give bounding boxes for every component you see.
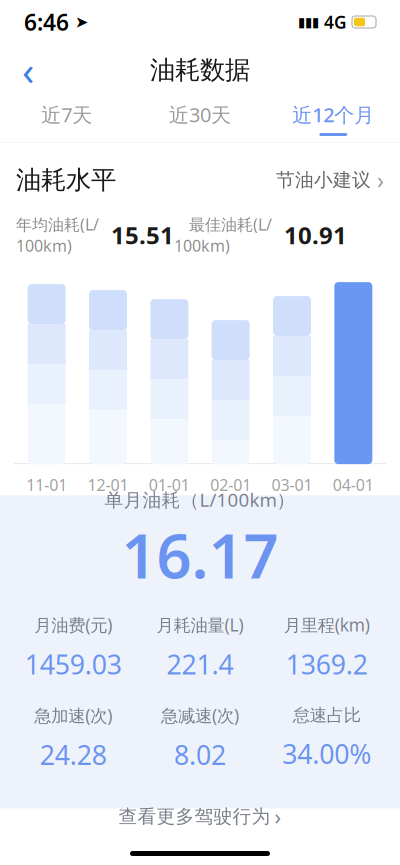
staticText: 04-01 bbox=[333, 474, 374, 495]
staticText: › bbox=[274, 802, 281, 830]
button[interactable]: 返回 bbox=[6, 48, 50, 92]
staticText: 02-01 bbox=[210, 474, 251, 495]
staticText: 近12个月 bbox=[292, 101, 374, 128]
staticText: 急减速(次) bbox=[161, 704, 239, 727]
button[interactable]: 近7天 bbox=[0, 96, 133, 142]
staticText: 急加速(次) bbox=[34, 704, 112, 727]
staticText: 15.51 bbox=[99, 219, 174, 251]
staticText: 年均油耗(L/100km) bbox=[16, 214, 99, 256]
staticText: 最佳油耗(L/100km) bbox=[174, 214, 272, 256]
staticText: ‹ bbox=[22, 43, 34, 96]
button[interactable]: 近30天 bbox=[133, 96, 267, 142]
staticText: 6:46 bbox=[24, 7, 69, 37]
staticText: 怠速占比 bbox=[293, 705, 361, 726]
staticText: 16.17 bbox=[121, 514, 278, 595]
staticText: 油耗数据 bbox=[150, 54, 250, 85]
button[interactable]: 节油小建议 bbox=[276, 165, 384, 195]
staticText: 34.00% bbox=[282, 736, 371, 771]
staticText: 221.4 bbox=[166, 646, 233, 682]
staticText: 12-01 bbox=[87, 474, 128, 495]
staticText: 油耗水平 bbox=[16, 164, 116, 196]
button[interactable]: 近12个月 bbox=[267, 96, 400, 142]
staticText: › bbox=[377, 165, 384, 195]
staticText: 1369.2 bbox=[286, 646, 368, 682]
staticText: 01-01 bbox=[149, 474, 190, 495]
staticText: 近30天 bbox=[169, 101, 231, 128]
staticText: 10.91 bbox=[272, 219, 347, 251]
staticText: 月里程(km) bbox=[284, 613, 370, 636]
staticText: 近7天 bbox=[41, 101, 92, 128]
staticText: ➤ bbox=[69, 13, 88, 31]
button[interactable]: 查看更多驾驶行为 bbox=[0, 794, 400, 838]
staticText: 03-01 bbox=[271, 474, 312, 495]
staticText: ▮▮▮ bbox=[298, 14, 319, 29]
staticText: 月耗油量(L) bbox=[156, 613, 243, 636]
staticText: 1459.03 bbox=[25, 646, 122, 682]
staticText: 24.28 bbox=[40, 737, 107, 772]
staticText: 8.02 bbox=[174, 737, 226, 772]
staticText: 4G bbox=[319, 10, 352, 33]
staticText: 月油费(元) bbox=[34, 613, 112, 636]
staticText: 11-01 bbox=[26, 474, 67, 495]
staticText: 单月油耗（L/100km） bbox=[104, 487, 295, 512]
staticText: 查看更多驾驶行为 bbox=[118, 805, 270, 828]
staticText: 节油小建议 bbox=[276, 169, 371, 191]
